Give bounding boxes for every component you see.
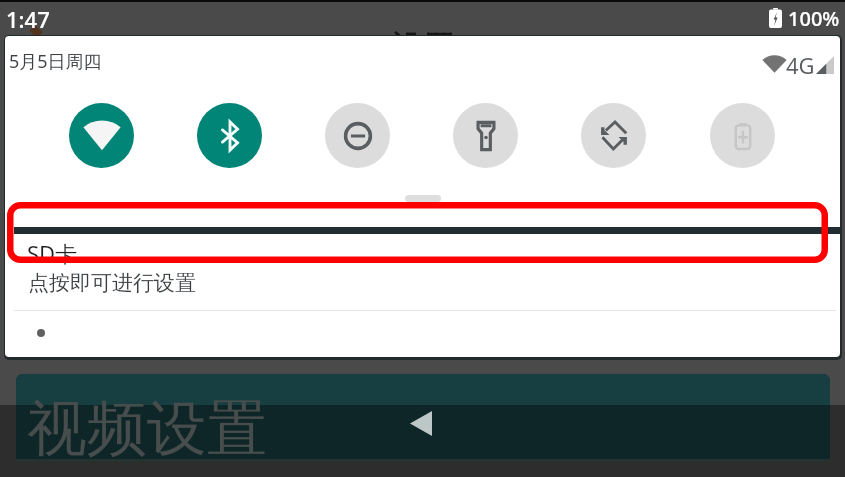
button[interactable]: Bluetooth xyxy=(197,103,262,168)
button[interactable]: Back xyxy=(410,411,432,436)
staticText: 4G xyxy=(786,50,815,80)
button[interactable]: Do not disturb xyxy=(325,103,390,168)
button[interactable]: Auto rotate xyxy=(581,103,646,168)
button[interactable]: Wi-Fi xyxy=(69,103,134,168)
staticText: 点按即可进行设置 xyxy=(28,270,196,296)
staticText: 100% xyxy=(788,5,840,32)
staticText: 视频设置 xyxy=(27,391,267,467)
staticText: 1:47 xyxy=(6,4,50,34)
button[interactable] xyxy=(405,195,441,202)
staticText: SD卡 xyxy=(27,238,78,268)
button[interactable]: Battery saver xyxy=(710,103,775,168)
button[interactable]: Flashlight xyxy=(453,103,518,168)
staticText: 5月5日周四 xyxy=(9,49,102,74)
